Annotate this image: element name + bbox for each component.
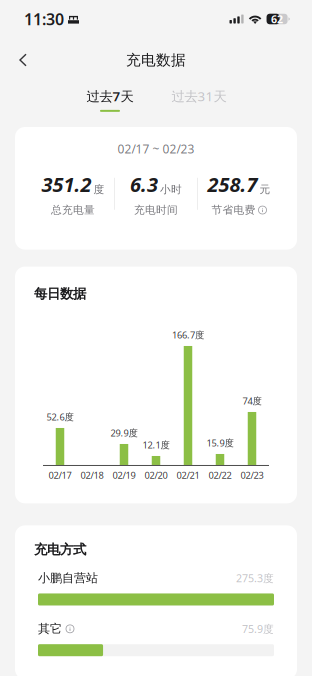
staticText: 62 (271, 12, 283, 26)
staticText: 6.3 (130, 171, 158, 197)
staticText: 其它 (38, 621, 62, 636)
staticText: 每日数据 (34, 286, 86, 302)
button[interactable]: 过去7天 (66, 84, 154, 112)
staticText: 02/17 ~ 02/23 (117, 141, 194, 157)
staticText: 02/20 (144, 469, 167, 481)
staticText: 02/22 (208, 469, 231, 481)
staticText: 02/21 (176, 469, 199, 481)
staticText: 02/18 (80, 469, 103, 481)
staticText: 过去31天 (171, 87, 226, 105)
staticText: 275.3度 (236, 571, 274, 585)
staticText: 29.9度 (110, 427, 137, 439)
staticText: 小鹏自营站 (38, 571, 98, 585)
button[interactable]: 过去31天 (154, 84, 244, 112)
staticText: 11:30 (24, 8, 64, 30)
staticText: 351.2 (41, 171, 91, 197)
staticText: 总充电量 (51, 203, 95, 217)
staticText: 166.7度 (172, 329, 204, 341)
staticText: 充电时间 (134, 203, 178, 217)
staticText: 02/23 (240, 469, 263, 481)
staticText: 小时 (160, 183, 182, 196)
staticText: 元 (259, 183, 270, 196)
staticText: 02/17 (48, 469, 71, 481)
staticText: 52.6度 (46, 411, 73, 423)
staticText: 258.7 (207, 171, 257, 197)
staticText: 75.9度 (242, 622, 274, 636)
staticText: 充电方式 (34, 541, 86, 558)
staticText: 充电数据 (126, 51, 186, 69)
staticText: 12.1度 (142, 439, 169, 451)
staticText: 15.9度 (206, 437, 233, 449)
staticText: 过去7天 (86, 87, 133, 105)
button[interactable]: 返回 (0, 42, 41, 77)
staticText: 节省电费 (211, 203, 255, 217)
staticText: 74度 (242, 395, 261, 407)
staticText: 度 (93, 183, 104, 196)
staticText: 02/19 (112, 469, 135, 481)
